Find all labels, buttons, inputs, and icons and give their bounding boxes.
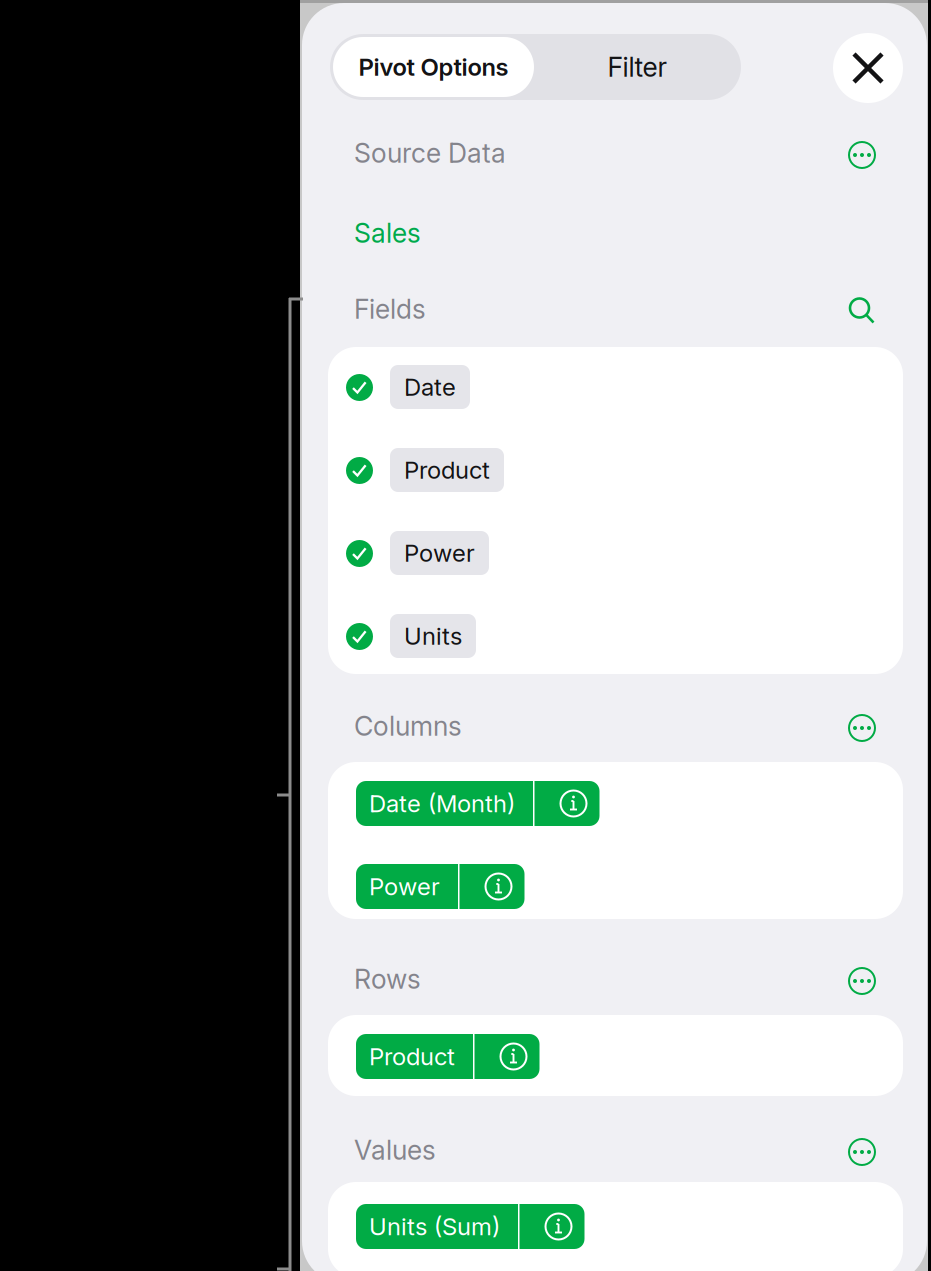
staticText: Columns — [354, 710, 462, 742]
button[interactable]: More options — [838, 957, 886, 1005]
staticText: Power — [369, 872, 440, 901]
staticText: Date — [404, 372, 456, 401]
staticText: Product — [404, 455, 490, 484]
button[interactable]: Filter — [537, 37, 738, 97]
staticText: Date (Month) — [369, 789, 515, 818]
button[interactable]: Close — [833, 33, 903, 103]
staticText: Power — [404, 538, 475, 567]
staticText: Product — [369, 1042, 455, 1071]
staticText: Units — [404, 621, 462, 650]
button[interactable]: Sales — [354, 216, 514, 250]
button[interactable]: Product — [328, 448, 903, 492]
staticText: Filter — [607, 51, 667, 83]
staticText: Values — [354, 1134, 436, 1166]
staticText: Pivot Options — [358, 52, 508, 81]
staticText: Sales — [354, 217, 421, 249]
button[interactable]: More options — [838, 704, 886, 752]
button[interactable]: Power — [328, 531, 903, 575]
button[interactable]: Search — [838, 287, 886, 335]
button[interactable]: Product — [356, 1034, 539, 1079]
button[interactable]: Power — [356, 864, 524, 909]
button[interactable]: Date (Month) — [356, 781, 599, 826]
staticText: Rows — [354, 963, 421, 995]
staticText: Units (Sum) — [369, 1212, 500, 1241]
button[interactable]: More options — [838, 1128, 886, 1176]
staticText: Source Data — [354, 137, 506, 169]
button[interactable]: Units (Sum) — [356, 1204, 584, 1249]
button[interactable]: Units — [328, 614, 903, 658]
button[interactable]: Date — [328, 365, 903, 409]
staticText: Fields — [354, 293, 426, 325]
button[interactable]: Pivot Options — [333, 37, 534, 97]
button[interactable]: More options — [838, 131, 886, 179]
